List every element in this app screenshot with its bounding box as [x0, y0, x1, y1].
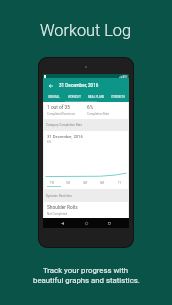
- button[interactable]: 1Y: [111, 179, 128, 186]
- button[interactable]: Back: [47, 82, 54, 89]
- staticText: Track your progress with: [43, 266, 129, 275]
- button[interactable]: Recents: [105, 219, 114, 228]
- staticText: Completed Exercises: [47, 112, 76, 116]
- button[interactable]: Home: [82, 219, 91, 228]
- staticText: Shoulder Rolls: [47, 205, 78, 211]
- staticText: beautiful graphs and statistics.: [33, 276, 140, 285]
- button[interactable]: 6M: [94, 179, 111, 186]
- staticText: 6%: [47, 140, 52, 144]
- staticText: Completion Rate: [87, 112, 110, 116]
- button[interactable]: 3M: [77, 179, 94, 186]
- staticText: 31 December, 2016: [47, 134, 83, 139]
- staticText: GENERAL: [48, 95, 60, 98]
- button[interactable]: 1W: [44, 179, 60, 186]
- staticText: MEAL PLANS: [88, 95, 105, 98]
- button[interactable]: Shoulder Rolls: [44, 202, 128, 218]
- staticText: 1W: [50, 181, 55, 184]
- staticText: Category Completion Rate: [46, 123, 83, 127]
- staticText: Dynamic Stretches: [46, 194, 72, 198]
- button[interactable]: MEAL PLANS: [85, 92, 107, 101]
- button[interactable]: STRENGTH: [107, 92, 129, 101]
- staticText: 6M: [100, 181, 105, 184]
- staticText: Not Completed: [47, 212, 68, 216]
- staticText: 3M: [83, 181, 88, 184]
- staticText: WORKOUT: [68, 95, 81, 98]
- button[interactable]: Back: [58, 219, 67, 228]
- staticText: 1M: [66, 181, 71, 184]
- staticText: 1 out of 35: [47, 105, 71, 111]
- button[interactable]: GENERAL: [43, 92, 64, 101]
- staticText: 6%: [87, 105, 94, 111]
- staticText: Workout Log: [40, 21, 132, 40]
- button[interactable]: WORKOUT: [64, 92, 85, 101]
- staticText: 1Y: [118, 181, 122, 184]
- staticText: 31 December, 2016: [59, 83, 99, 88]
- staticText: STRENGTH: [111, 95, 125, 98]
- button[interactable]: 1M: [60, 179, 77, 186]
